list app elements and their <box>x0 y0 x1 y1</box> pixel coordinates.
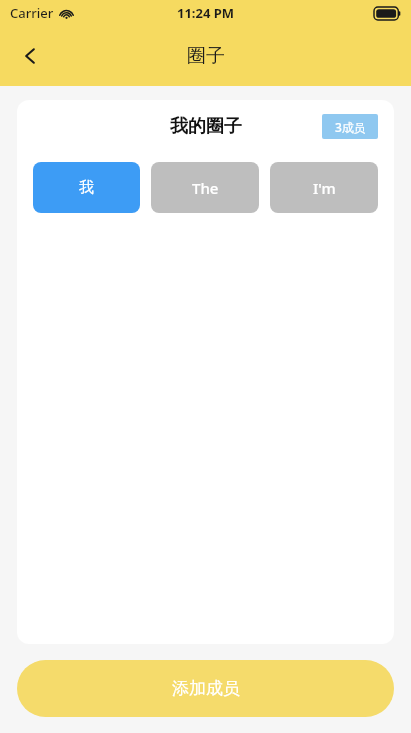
staticText: The <box>192 178 219 198</box>
staticText: 3成员 <box>335 119 366 135</box>
button[interactable]: 3成员 <box>322 114 378 139</box>
staticText: Carrier <box>10 4 54 22</box>
button[interactable]: Back <box>8 34 52 78</box>
button[interactable]: The <box>151 162 259 213</box>
button[interactable]: 添加成员 <box>17 660 394 717</box>
button[interactable]: I'm <box>270 162 378 213</box>
staticText: 11:24 PM <box>177 4 235 22</box>
staticText: 圈子 <box>187 44 225 68</box>
staticText: 我的圈子 <box>170 115 242 138</box>
button[interactable]: 我 <box>33 162 140 213</box>
staticText: 我 <box>79 178 94 197</box>
staticText: 添加成员 <box>172 678 240 699</box>
staticText: I'm <box>313 178 336 198</box>
